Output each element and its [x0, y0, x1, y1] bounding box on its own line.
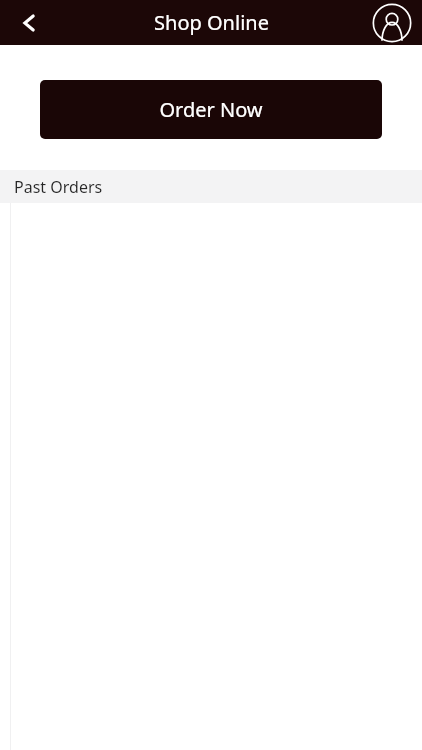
button[interactable]: Account — [364, 0, 422, 45]
button[interactable]: Order Now — [40, 80, 382, 139]
staticText: Order Now — [159, 96, 263, 123]
button[interactable]: Back — [0, 0, 62, 45]
staticText: Past Orders — [14, 176, 103, 198]
staticText: Shop Online — [154, 9, 269, 36]
